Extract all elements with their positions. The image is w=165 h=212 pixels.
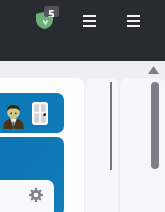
button[interactable]	[0, 137, 64, 212]
button[interactable]: Settings	[0, 180, 54, 212]
button[interactable]: Scroll up	[148, 66, 159, 74]
staticText: 5	[48, 6, 55, 17]
button[interactable]	[0, 93, 64, 133]
button[interactable]: Menu	[83, 15, 96, 27]
button[interactable]: More options	[127, 15, 140, 27]
